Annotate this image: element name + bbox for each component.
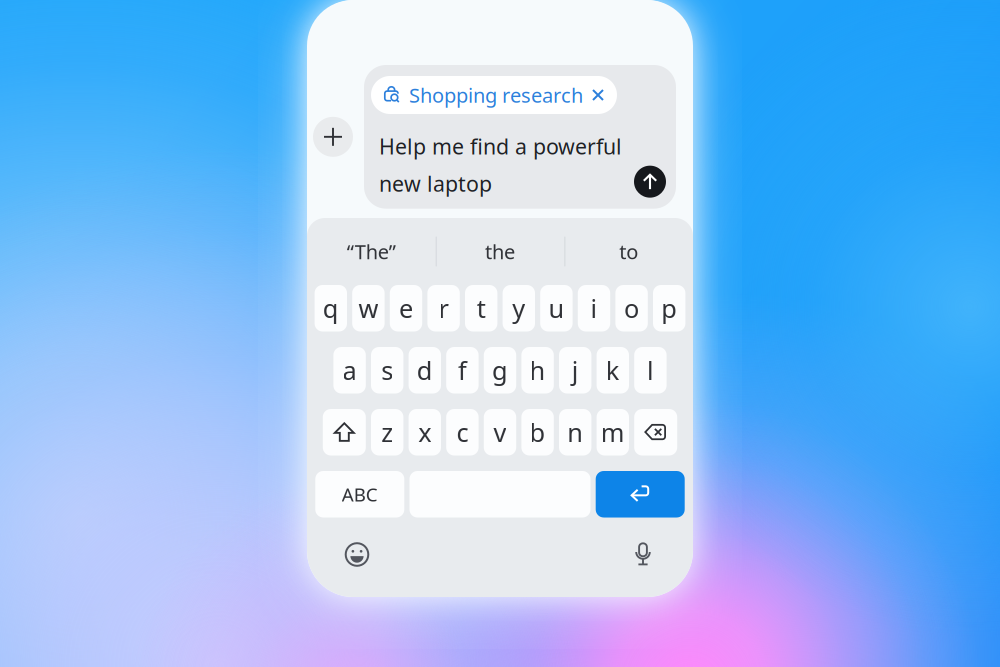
button[interactable]: Return [596,471,685,517]
button[interactable]: ABC [315,471,404,517]
button[interactable]: g [484,347,516,393]
button[interactable]: m [597,409,629,455]
staticText: o [624,291,639,325]
button[interactable]: z [371,409,403,455]
staticText: a [343,353,357,387]
button[interactable]: f [446,347,479,393]
staticText: n [567,415,583,449]
button[interactable]: n [559,409,591,455]
staticText: c [456,415,468,449]
staticText: y [512,291,525,325]
button[interactable]: t [465,285,497,331]
button[interactable]: l [634,347,667,393]
button[interactable]: h [521,347,554,393]
staticText: Shopping research [409,82,583,108]
staticText: t [477,291,486,325]
staticText: b [530,415,546,449]
button[interactable]: s [371,347,403,393]
button[interactable]: Add attachment [313,117,353,157]
staticText: k [606,353,620,387]
staticText: Help me find a powerful [379,132,622,160]
button[interactable]: r [427,285,460,331]
staticText: f [458,353,467,387]
button[interactable]: x [409,409,441,455]
staticText: m [601,415,625,449]
staticText: q [323,291,339,325]
staticText: x [418,415,431,449]
button[interactable]: y [503,285,535,331]
staticText: h [530,353,546,387]
button[interactable]: p [653,285,685,331]
button[interactable]: o [615,285,648,331]
button[interactable]: v [484,409,516,455]
staticText: g [492,353,508,387]
staticText: the [485,238,515,265]
button[interactable]: Delete [634,409,677,455]
staticText: l [647,353,654,387]
staticText: v [493,415,506,449]
button[interactable]: a [333,347,366,393]
button[interactable]: e [390,285,422,331]
staticText: ABC [342,482,378,507]
button[interactable]: Emoji [339,536,375,572]
button[interactable]: Send [634,166,666,198]
staticText: u [548,291,564,325]
staticText: j [572,353,579,387]
staticText: new laptop [379,169,492,198]
staticText: p [661,291,677,325]
button[interactable]: i [578,285,610,331]
button[interactable]: Dictate [625,536,661,572]
staticText: e [399,291,413,325]
button[interactable]: q [315,285,347,331]
staticText: i [590,291,597,325]
button[interactable]: d [409,347,441,393]
staticText: w [358,291,378,325]
staticText: d [417,353,433,387]
button[interactable]: Shopping research [371,76,617,114]
button[interactable]: c [446,409,479,455]
button[interactable]: j [559,347,591,393]
button[interactable]: k [597,347,629,393]
staticText: z [381,415,393,449]
button[interactable]: w [352,285,385,331]
staticText: to [619,238,638,265]
button[interactable]: b [521,409,554,455]
staticText: s [381,353,393,387]
staticText: “The” [347,238,396,265]
staticText: r [439,291,449,325]
button[interactable]: u [540,285,573,331]
button[interactable]: Shift [323,409,366,455]
